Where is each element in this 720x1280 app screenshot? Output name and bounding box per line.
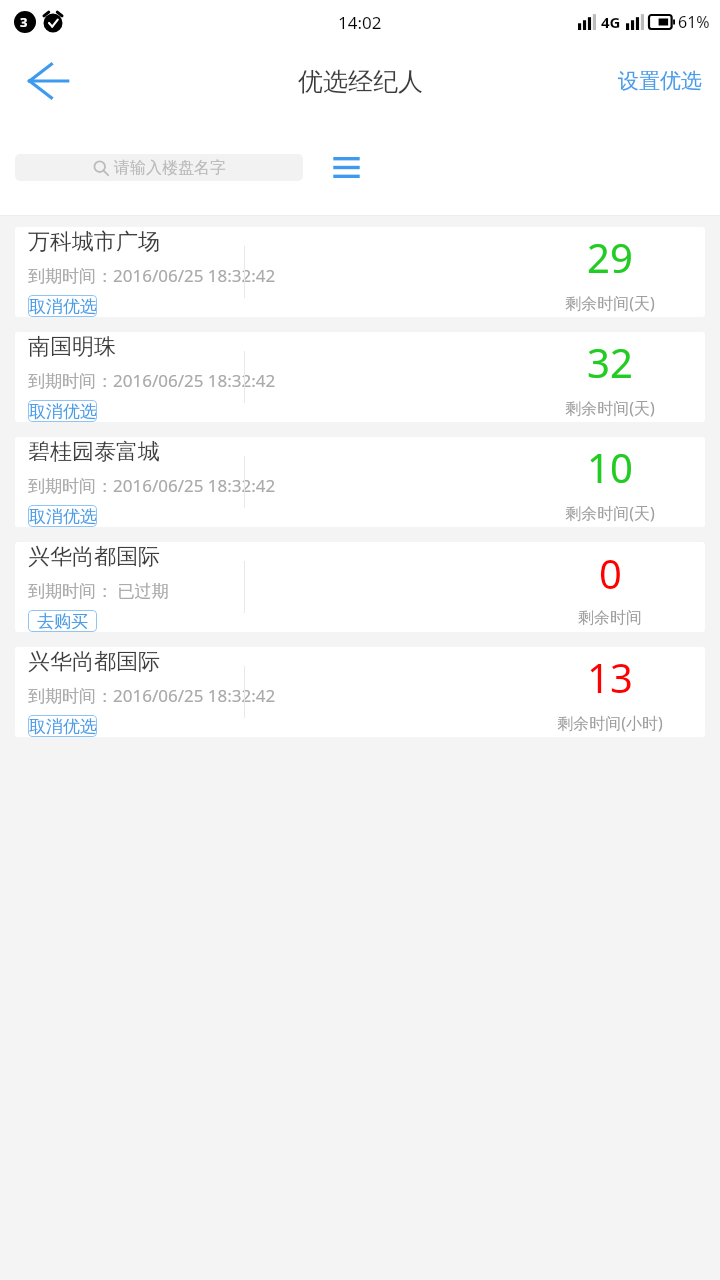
button[interactable]: 南国明珠 <box>15 332 705 422</box>
staticText: 32 <box>587 335 633 389</box>
staticText: 去购买 <box>37 611 88 632</box>
staticText: 取消优选 <box>29 716 97 737</box>
button[interactable]: Menu <box>324 145 368 189</box>
staticText: 3 <box>20 13 28 31</box>
button[interactable]: 去购买 <box>28 610 97 632</box>
button[interactable]: 兴华尚都国际 <box>15 647 705 737</box>
staticText: 61% <box>678 11 710 33</box>
staticText: 0 <box>599 546 622 600</box>
staticText: 优选经纪人 <box>298 66 423 97</box>
staticText: 到期时间：2016/06/25 18:32:42 <box>28 474 276 497</box>
staticText: 请输入楼盘名字 <box>114 158 226 178</box>
button[interactable]: Back <box>0 44 96 118</box>
button[interactable]: 兴华尚都国际 <box>15 542 705 632</box>
button[interactable]: 取消优选 <box>28 505 97 527</box>
staticText: 剩余时间(小时) <box>557 712 663 734</box>
button[interactable]: 取消优选 <box>28 295 97 317</box>
staticText: 取消优选 <box>29 401 97 422</box>
staticText: 到期时间：2016/06/25 18:32:42 <box>28 369 276 392</box>
button[interactable]: 请输入楼盘名字 <box>15 154 303 181</box>
staticText: 14:02 <box>338 11 382 34</box>
staticText: 4G <box>601 12 621 32</box>
staticText: 兴华尚都国际 <box>28 543 160 571</box>
staticText: 南国明珠 <box>28 333 116 361</box>
button[interactable]: 碧桂园泰富城 <box>15 437 705 527</box>
staticText: 剩余时间 <box>578 608 642 628</box>
staticText: 10 <box>587 440 633 494</box>
staticText: 碧桂园泰富城 <box>28 438 160 466</box>
button[interactable]: 取消优选 <box>28 715 97 737</box>
staticText: 取消优选 <box>29 296 97 317</box>
staticText: 到期时间： 已过期 <box>28 579 169 602</box>
staticText: 剩余时间(天) <box>565 397 655 419</box>
staticText: 剩余时间(天) <box>565 502 655 524</box>
staticText: 万科城市广场 <box>28 228 160 256</box>
staticText: 13 <box>587 650 633 704</box>
staticText: 到期时间：2016/06/25 18:32:42 <box>28 684 276 707</box>
staticText: 设置优选 <box>618 68 702 94</box>
button[interactable]: 设置优选 <box>600 44 720 118</box>
staticText: 29 <box>587 230 633 284</box>
staticText: 取消优选 <box>29 506 97 527</box>
staticText: 到期时间：2016/06/25 18:32:42 <box>28 264 276 287</box>
staticText: 剩余时间(天) <box>565 292 655 314</box>
button[interactable]: 万科城市广场 <box>15 227 705 317</box>
button[interactable]: 取消优选 <box>28 400 97 422</box>
staticText: 兴华尚都国际 <box>28 648 160 676</box>
